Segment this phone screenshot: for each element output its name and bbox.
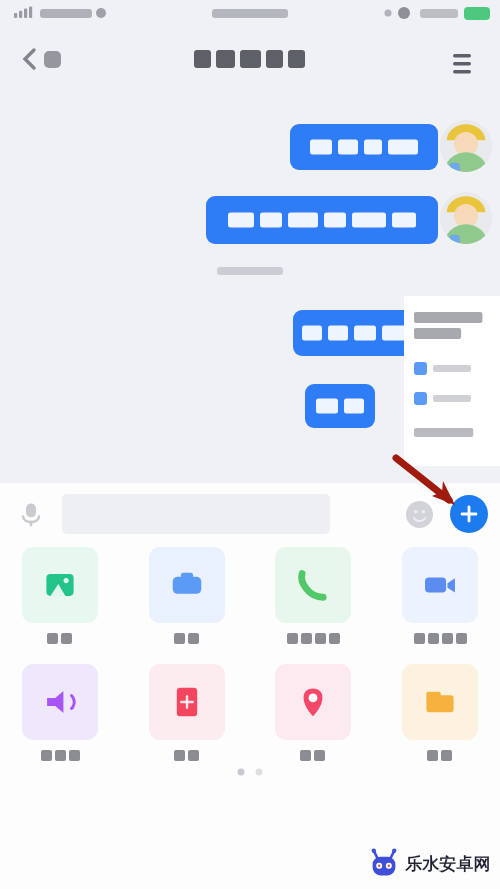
staticText: 乐水安卓网 [405,854,490,875]
button[interactable]: audio [18,664,102,761]
button[interactable]: pin [271,664,355,761]
button[interactable] [305,384,375,428]
button[interactable]: phone [271,547,355,644]
button[interactable]: Avatar [440,120,492,172]
button[interactable]: Back [10,37,70,81]
button[interactable]: Emoji [396,491,442,537]
button[interactable]: video [398,547,482,644]
button[interactable] [290,124,438,170]
button[interactable]: Avatar [440,192,492,244]
button[interactable]: Menu [442,39,482,79]
button[interactable] [293,310,415,356]
button[interactable]: photo [18,547,102,644]
button[interactable]: camera [145,547,229,644]
button[interactable]: folder [398,664,482,761]
button[interactable]: Add attachment [450,495,488,533]
button[interactable]: Voice input [6,489,56,539]
button[interactable] [404,296,500,466]
button[interactable]: card [145,664,229,761]
button[interactable] [206,196,438,244]
